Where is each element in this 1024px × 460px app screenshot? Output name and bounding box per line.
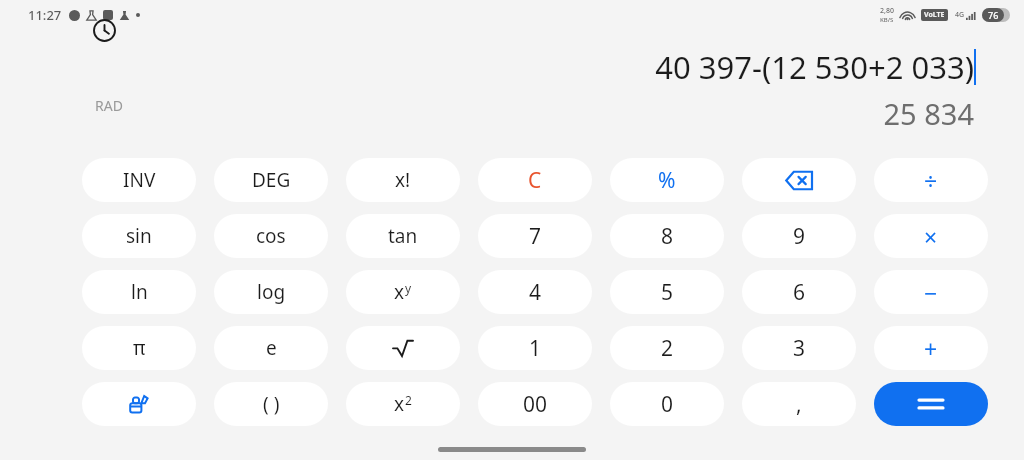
staticText: × <box>924 221 938 252</box>
button[interactable]: tan <box>346 214 460 258</box>
staticText: log <box>257 279 286 305</box>
button[interactable]: History <box>86 12 122 48</box>
button[interactable]: x <box>346 382 460 426</box>
button[interactable]: x! <box>346 158 460 202</box>
button[interactable]: Unit converter <box>82 382 196 426</box>
staticText: e <box>266 335 277 361</box>
button[interactable]: 6 <box>742 270 856 314</box>
staticText: x <box>394 279 405 305</box>
staticText: C <box>528 166 542 195</box>
staticText: tan <box>388 223 418 249</box>
button[interactable]: DEG <box>214 158 328 202</box>
staticText: 3 <box>793 334 806 363</box>
staticText: 4G <box>955 10 965 20</box>
button[interactable]: 8 <box>610 214 724 258</box>
button[interactable]: π <box>82 326 196 370</box>
button[interactable]: cos <box>214 214 328 258</box>
button[interactable]: 9 <box>742 214 856 258</box>
button[interactable]: + <box>874 326 988 370</box>
staticText: x! <box>395 167 411 193</box>
button[interactable]: 00 <box>478 382 592 426</box>
staticText: 4 <box>529 278 542 307</box>
staticText: 11:27 <box>28 6 62 24</box>
staticText: 2 <box>661 334 674 363</box>
staticText: , <box>796 390 802 419</box>
staticText: 0 <box>661 390 674 419</box>
button[interactable]: ln <box>82 270 196 314</box>
staticText: INV <box>123 167 156 193</box>
staticText: DEG <box>252 167 291 193</box>
button[interactable]: % <box>610 158 724 202</box>
staticText: 8 <box>661 222 674 251</box>
staticText: % <box>658 166 676 195</box>
staticText: 00 <box>523 390 548 419</box>
button[interactable]: log <box>214 270 328 314</box>
staticText: y <box>405 280 412 296</box>
button[interactable]: Delete <box>742 158 856 202</box>
button[interactable]: x <box>346 270 460 314</box>
button[interactable]: ÷ <box>874 158 988 202</box>
staticText: cos <box>256 223 286 249</box>
button[interactable]: 2 <box>610 326 724 370</box>
staticText: 7 <box>529 222 542 251</box>
staticText: 5 <box>661 278 674 307</box>
button[interactable]: 1 <box>478 326 592 370</box>
button[interactable]: sin <box>82 214 196 258</box>
button[interactable]: 4 <box>478 270 592 314</box>
button[interactable]: RAD <box>95 96 123 115</box>
button[interactable]: C <box>478 158 592 202</box>
button[interactable]: , <box>742 382 856 426</box>
staticText: 25 834 <box>883 94 974 133</box>
staticText: VoLTE <box>924 10 945 20</box>
button[interactable]: e <box>214 326 328 370</box>
staticText: ÷ <box>924 165 938 196</box>
button[interactable]: 5 <box>610 270 724 314</box>
button[interactable]: × <box>874 214 988 258</box>
button[interactable]: Equals <box>874 382 988 426</box>
staticText: 76 <box>988 9 999 21</box>
button[interactable]: 7 <box>478 214 592 258</box>
button[interactable]: ( ) <box>214 382 328 426</box>
staticText: π <box>133 335 146 361</box>
staticText: 1 <box>529 334 542 363</box>
button[interactable]: 0 <box>610 382 724 426</box>
staticText: x <box>394 391 405 417</box>
staticText: 2,80 <box>880 6 894 16</box>
staticText: 2 <box>405 392 412 408</box>
staticText: + <box>924 333 938 364</box>
button[interactable]: INV <box>82 158 196 202</box>
staticText: 6 <box>793 278 806 307</box>
button[interactable]: 3 <box>742 326 856 370</box>
button[interactable]: − <box>874 270 988 314</box>
staticText: ( ) <box>263 391 280 417</box>
staticText: KB/S <box>880 16 894 24</box>
staticText: − <box>924 277 938 308</box>
staticText: ln <box>131 279 148 305</box>
staticText: 40 397-(12 530+2 033) <box>655 46 974 88</box>
button[interactable]: Square root <box>346 326 460 370</box>
staticText: 9 <box>793 222 806 251</box>
staticText: sin <box>126 223 152 249</box>
